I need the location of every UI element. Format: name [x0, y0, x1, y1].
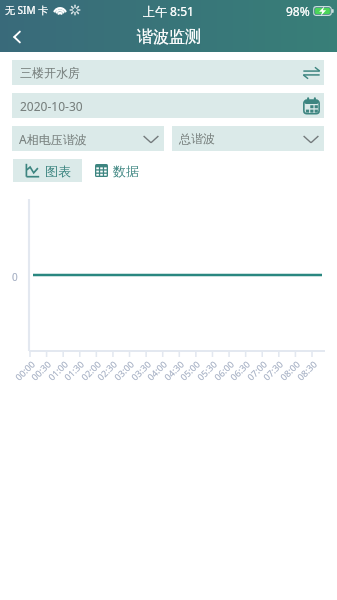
staticText: 2020-10-30: [20, 98, 83, 114]
staticText: 01:00: [45, 357, 71, 383]
button[interactable]: Pick date: [299, 93, 324, 118]
staticText: 02:30: [94, 357, 120, 383]
staticText: 05:00: [177, 357, 203, 383]
staticText: 0: [12, 270, 18, 284]
staticText: 04:30: [161, 357, 187, 383]
staticText: 06:30: [227, 357, 253, 383]
staticText: 07:00: [244, 357, 270, 383]
button[interactable]: 图表: [13, 159, 82, 182]
button[interactable]: 2020-10-30: [12, 93, 324, 118]
staticText: 06:00: [211, 357, 237, 383]
staticText: 04:00: [144, 357, 170, 383]
staticText: 图表: [45, 163, 71, 179]
button[interactable]: A相电压谐波: [12, 126, 164, 151]
button[interactable]: Back: [0, 22, 34, 52]
staticText: 02:00: [78, 357, 104, 383]
staticText: 08:30: [294, 357, 320, 383]
staticText: 08:00: [277, 357, 303, 383]
staticText: 03:30: [128, 357, 154, 383]
button[interactable]: 三楼开水房: [12, 60, 324, 85]
staticText: 数据: [113, 163, 139, 179]
staticText: 谐波监测: [137, 27, 201, 47]
staticText: 05:30: [194, 357, 220, 383]
staticText: 三楼开水房: [20, 65, 80, 80]
staticText: 07:30: [260, 357, 286, 383]
staticText: A相电压谐波: [19, 131, 87, 147]
staticText: 00:00: [12, 357, 38, 383]
staticText: 无 SIM 卡: [5, 3, 49, 17]
button[interactable]: 数据: [82, 159, 151, 182]
staticText: 01:30: [61, 357, 87, 383]
staticText: 上午 8:51: [143, 3, 194, 19]
staticText: 03:00: [111, 357, 137, 383]
staticText: 98%: [286, 3, 310, 19]
staticText: 00:30: [28, 357, 54, 383]
button[interactable]: 总谐波: [172, 126, 324, 151]
staticText: 总谐波: [179, 131, 215, 146]
button[interactable]: Switch device: [299, 60, 324, 85]
